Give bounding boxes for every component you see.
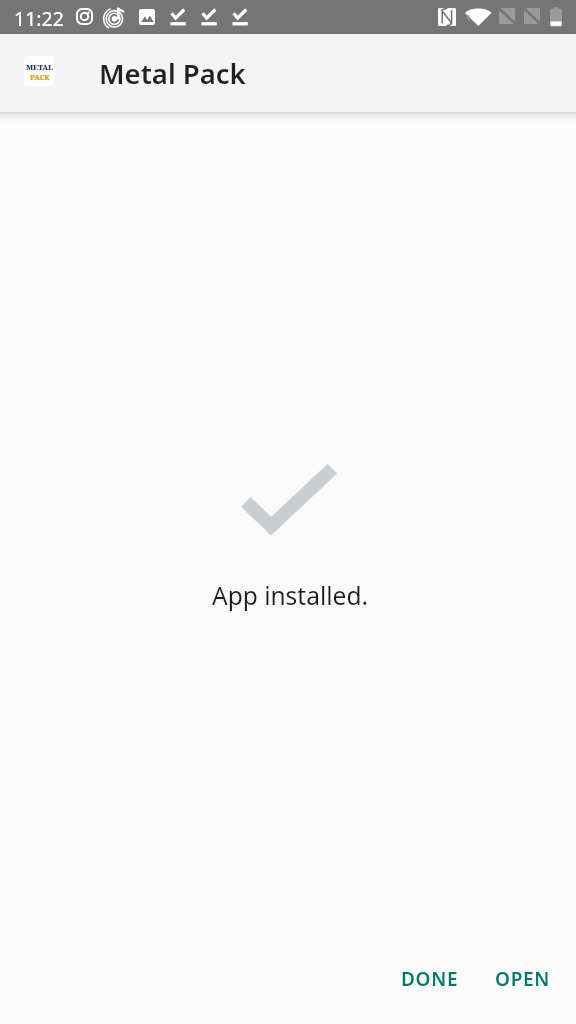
button[interactable]: OPEN xyxy=(477,954,569,1004)
staticText: PACK xyxy=(30,73,50,83)
staticText: OPEN xyxy=(495,966,551,992)
button[interactable]: DONE xyxy=(383,954,477,1004)
staticText: 11:22 xyxy=(14,5,64,32)
staticText: App installed. xyxy=(212,579,369,612)
button[interactable]: Metal Pack app icon xyxy=(24,56,54,86)
staticText: Metal Pack xyxy=(99,55,246,92)
staticText: METAL xyxy=(26,62,53,72)
staticText: DONE xyxy=(401,966,459,992)
